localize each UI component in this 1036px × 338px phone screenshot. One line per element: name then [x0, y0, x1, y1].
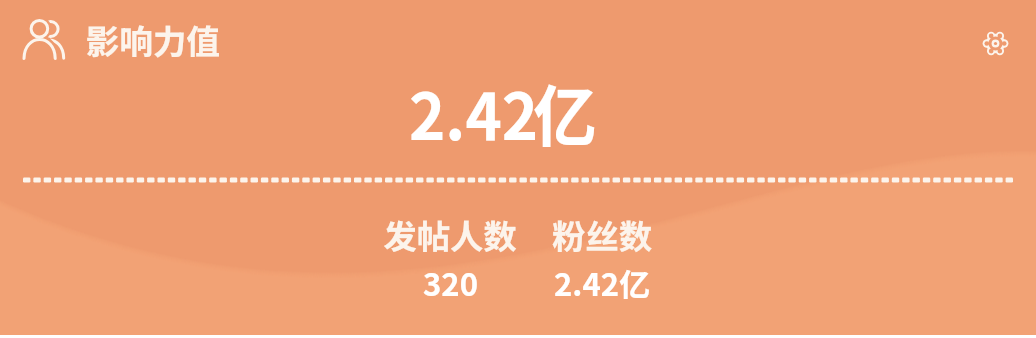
staticText: 影响力值	[86, 15, 220, 64]
button[interactable]: 影响力值	[14, 12, 232, 74]
staticText: 发帖人数	[383, 210, 517, 258]
staticText: 2.42亿	[554, 260, 650, 305]
button[interactable]: 粉丝数	[492, 210, 712, 305]
staticText: 粉丝数	[552, 210, 652, 258]
staticText: 2.42	[409, 65, 539, 150]
staticText: 亿	[533, 63, 597, 148]
button[interactable]: Settings	[971, 19, 1019, 67]
staticText: 320	[423, 260, 478, 305]
button[interactable]: 发帖人数	[340, 210, 560, 305]
